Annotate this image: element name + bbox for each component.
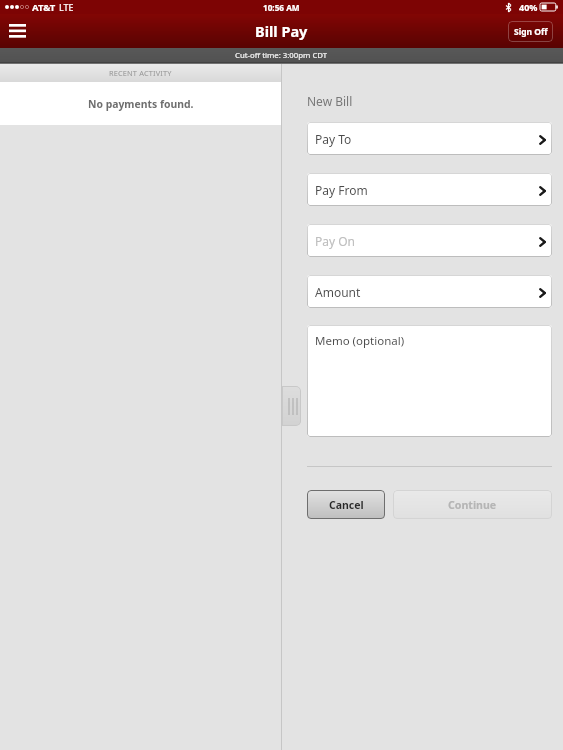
staticText: Bill Pay [255, 21, 308, 41]
button[interactable]: Sign Off [508, 21, 553, 42]
staticText: Pay To [315, 131, 352, 147]
staticText: Pay From [315, 182, 368, 198]
button[interactable]: Continue [393, 490, 552, 519]
button[interactable]: Pay From [307, 173, 552, 206]
button[interactable]: Pay To [307, 122, 552, 155]
staticText: Continue [448, 498, 497, 512]
staticText: RECENT ACTIVITY [109, 68, 172, 78]
staticText: Cut-off time: 3:00pm CDT [235, 50, 328, 61]
staticText: Cancel [329, 498, 364, 512]
staticText: AT&T [32, 1, 56, 14]
button[interactable]: Pay On [307, 224, 552, 257]
staticText: LTE [59, 1, 74, 13]
button[interactable]: Cancel [307, 490, 385, 519]
button[interactable]: Menu [2, 14, 33, 48]
staticText: Amount [315, 284, 361, 300]
staticText: 40% [519, 1, 538, 13]
staticText: Pay On [315, 233, 356, 249]
staticText: New Bill [307, 93, 353, 109]
staticText: 10:56 AM [263, 2, 300, 13]
button[interactable]: Amount [307, 275, 552, 308]
staticText: Sign Off [514, 26, 548, 38]
button[interactable]: Memo (optional) [307, 325, 552, 437]
button[interactable]: Resize panes [282, 386, 301, 426]
staticText: Memo (optional) [315, 333, 405, 349]
staticText: No payments found. [88, 97, 194, 111]
